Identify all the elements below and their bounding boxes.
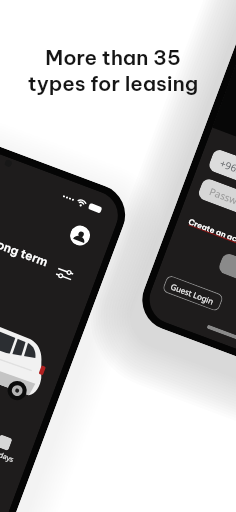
button[interactable]: Long term [0, 234, 50, 269]
staticText: Create an account [187, 217, 236, 252]
button[interactable]: +965 12345678 [207, 148, 236, 251]
staticText: Long term [0, 234, 50, 269]
button[interactable]: Create an account [187, 217, 236, 252]
button[interactable]: Profile [67, 223, 93, 248]
button[interactable]: Password [197, 177, 236, 279]
staticText: 3 days [0, 448, 15, 465]
staticText: Guest Login [169, 280, 216, 307]
staticText: +965 12345678 [218, 156, 236, 194]
staticText: More than 35 types for leasing [0, 44, 231, 106]
button[interactable]: Login [217, 252, 236, 322]
button[interactable]: Filter [54, 264, 76, 284]
button[interactable]: Guest Login [162, 274, 224, 312]
staticText: Password [207, 184, 236, 213]
